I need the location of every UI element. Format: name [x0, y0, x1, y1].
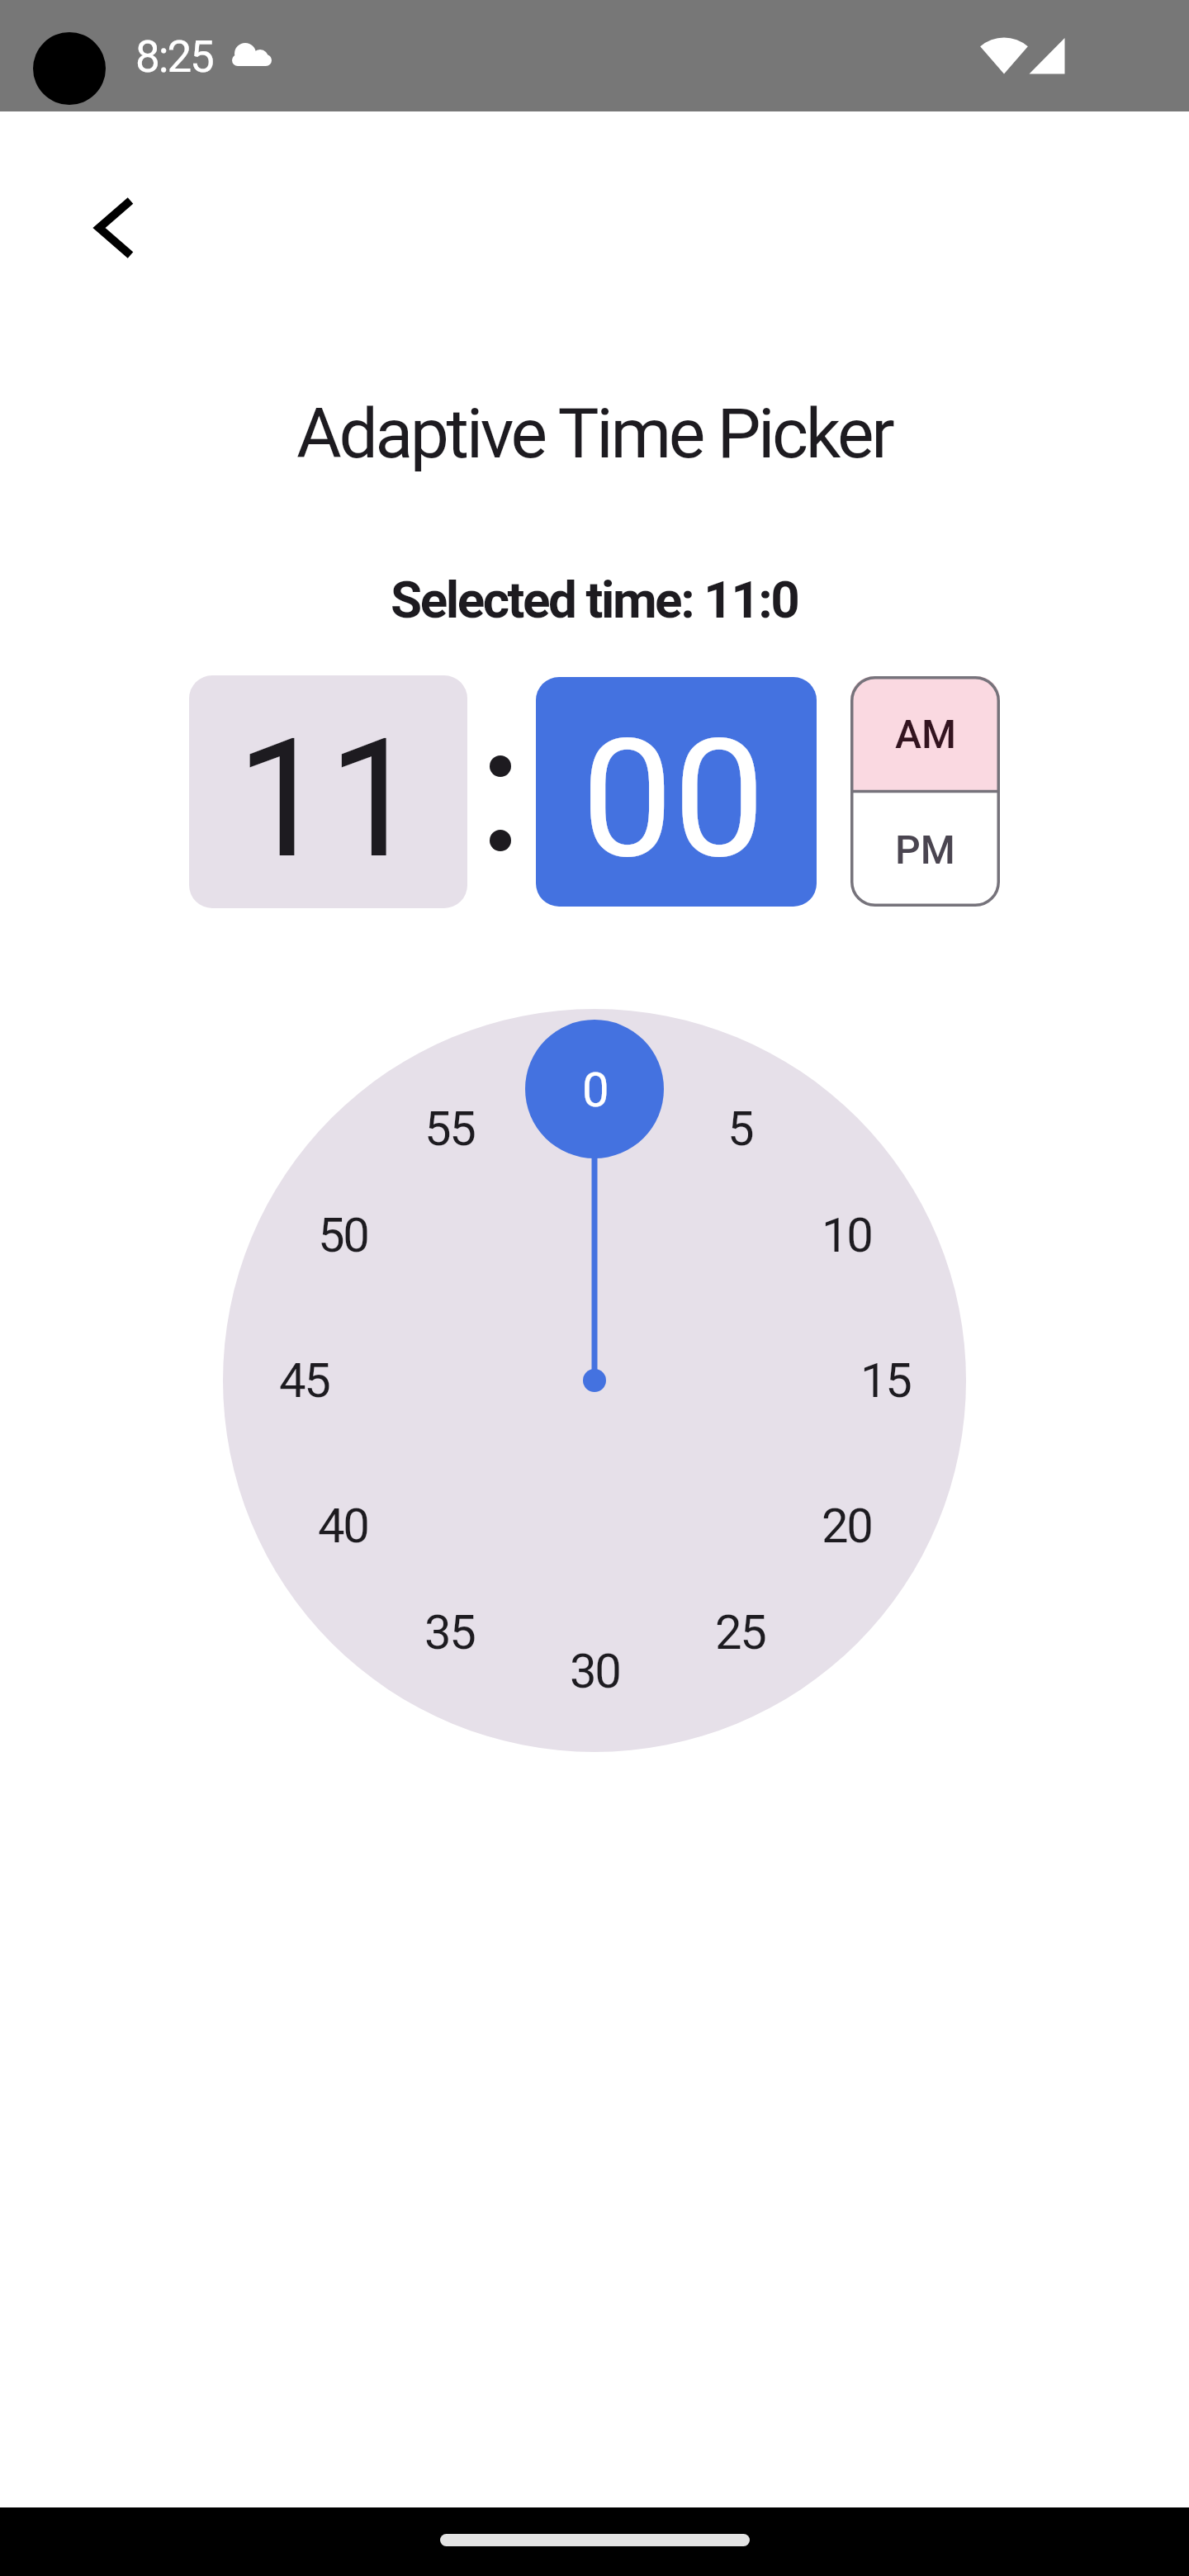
button[interactable]: AM: [850, 676, 1000, 792]
staticText: 8:25: [135, 31, 213, 83]
button[interactable]: 11: [189, 675, 467, 908]
staticText: 0: [582, 1062, 608, 1118]
staticText: 20: [822, 1498, 872, 1554]
staticText: 35: [424, 1604, 475, 1660]
staticText: 5: [727, 1101, 753, 1157]
staticText: Adaptive Time Picker: [296, 393, 893, 474]
staticText: AM: [895, 711, 956, 757]
button[interactable]: 00: [536, 677, 817, 907]
button[interactable]: [69, 182, 161, 274]
staticText: 10: [822, 1207, 872, 1263]
staticText: 50: [318, 1207, 368, 1263]
staticText: PM: [895, 826, 955, 873]
button[interactable]: PM: [850, 792, 1000, 907]
staticText: 11: [236, 703, 420, 895]
staticText: 25: [715, 1604, 765, 1660]
staticText: 55: [424, 1101, 475, 1157]
staticText: Selected time: 11:0: [391, 570, 798, 630]
staticText: 40: [318, 1498, 368, 1554]
staticText: 30: [570, 1643, 620, 1699]
staticText: 45: [279, 1352, 329, 1409]
staticText: 00: [581, 703, 765, 895]
staticText: 15: [860, 1352, 911, 1409]
